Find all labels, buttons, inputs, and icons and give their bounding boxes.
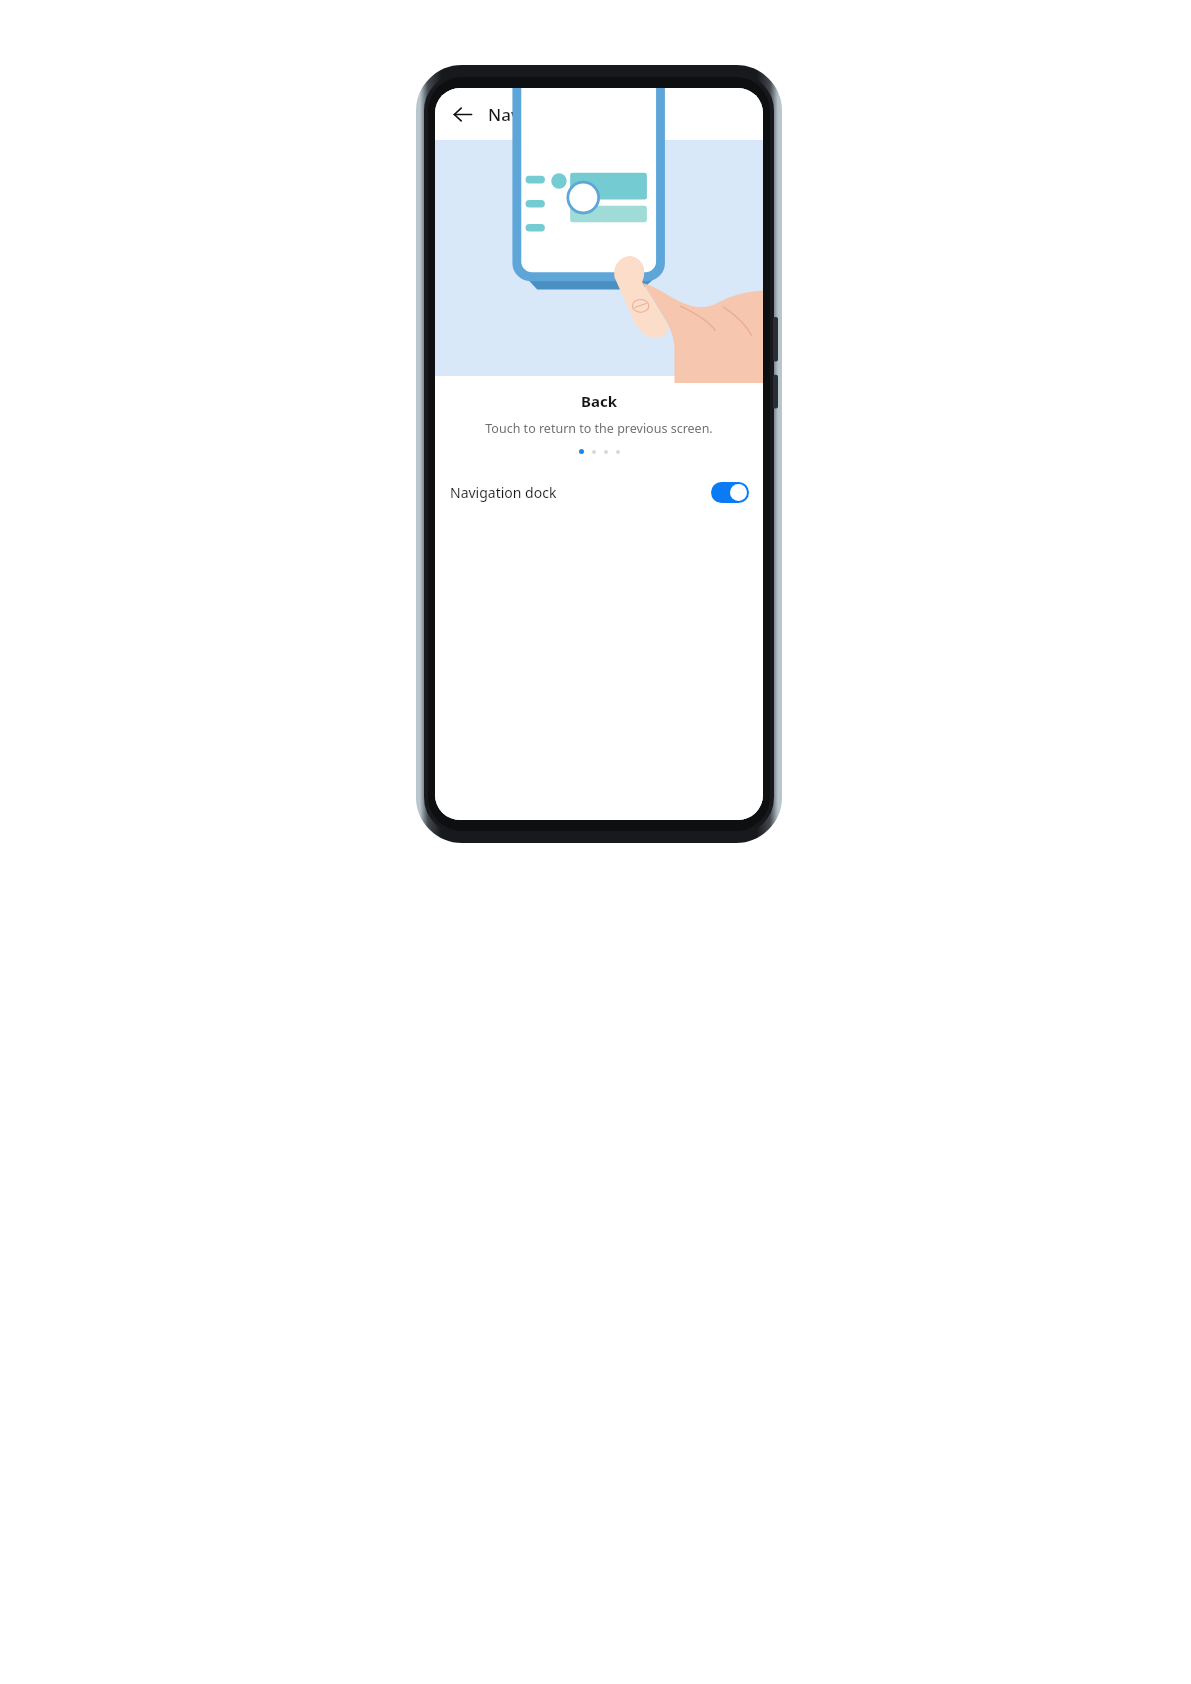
staticText: Back — [435, 391, 763, 411]
button[interactable]: Back — [446, 98, 478, 130]
button[interactable]: Navigation dock — [435, 471, 763, 513]
staticText: Navigation dock — [488, 103, 621, 126]
button[interactable]: Navigation dock toggle — [711, 482, 749, 503]
staticText: Navigation dock — [450, 483, 557, 502]
staticText: Touch to return to the previous screen. — [435, 420, 763, 437]
